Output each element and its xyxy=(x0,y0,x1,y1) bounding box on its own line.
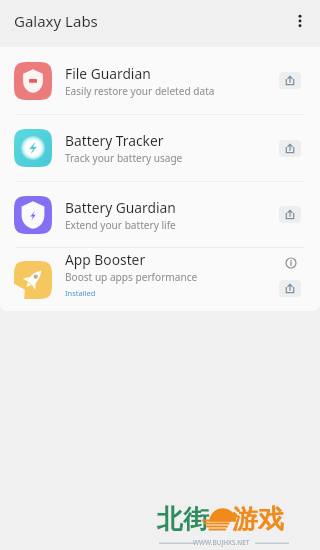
button[interactable]: More options xyxy=(286,7,314,35)
staticText: Boost up apps performance xyxy=(65,270,198,284)
staticText: App Booster xyxy=(65,250,146,269)
button[interactable]: Install File Guardian xyxy=(279,72,301,89)
button[interactable]: File Guardian xyxy=(0,47,320,114)
button[interactable]: Battery Guardian xyxy=(0,182,320,247)
staticText: Battery Guardian xyxy=(65,198,176,217)
button[interactable]: Install App Booster xyxy=(279,280,301,297)
button[interactable]: Info xyxy=(279,251,303,275)
staticText: Installed xyxy=(65,288,96,298)
staticText: Extend your battery life xyxy=(65,218,176,232)
staticText: Easily restore your deleted data xyxy=(65,84,215,98)
staticText: Track your battery usage xyxy=(65,151,183,165)
staticText: File Guardian xyxy=(65,64,151,83)
staticText: Battery Tracker xyxy=(65,131,164,150)
staticText: Galaxy Labs xyxy=(14,11,98,31)
button[interactable]: Battery Tracker xyxy=(0,115,320,181)
staticText: 游戏 xyxy=(232,503,284,536)
button[interactable]: Install Battery Guardian xyxy=(279,206,301,223)
button[interactable]: App Booster xyxy=(0,248,320,311)
button[interactable]: Install Battery Tracker xyxy=(279,140,301,157)
staticText: 北街 xyxy=(157,503,209,536)
staticText: WWW.BUJHXS.NET xyxy=(193,538,250,547)
